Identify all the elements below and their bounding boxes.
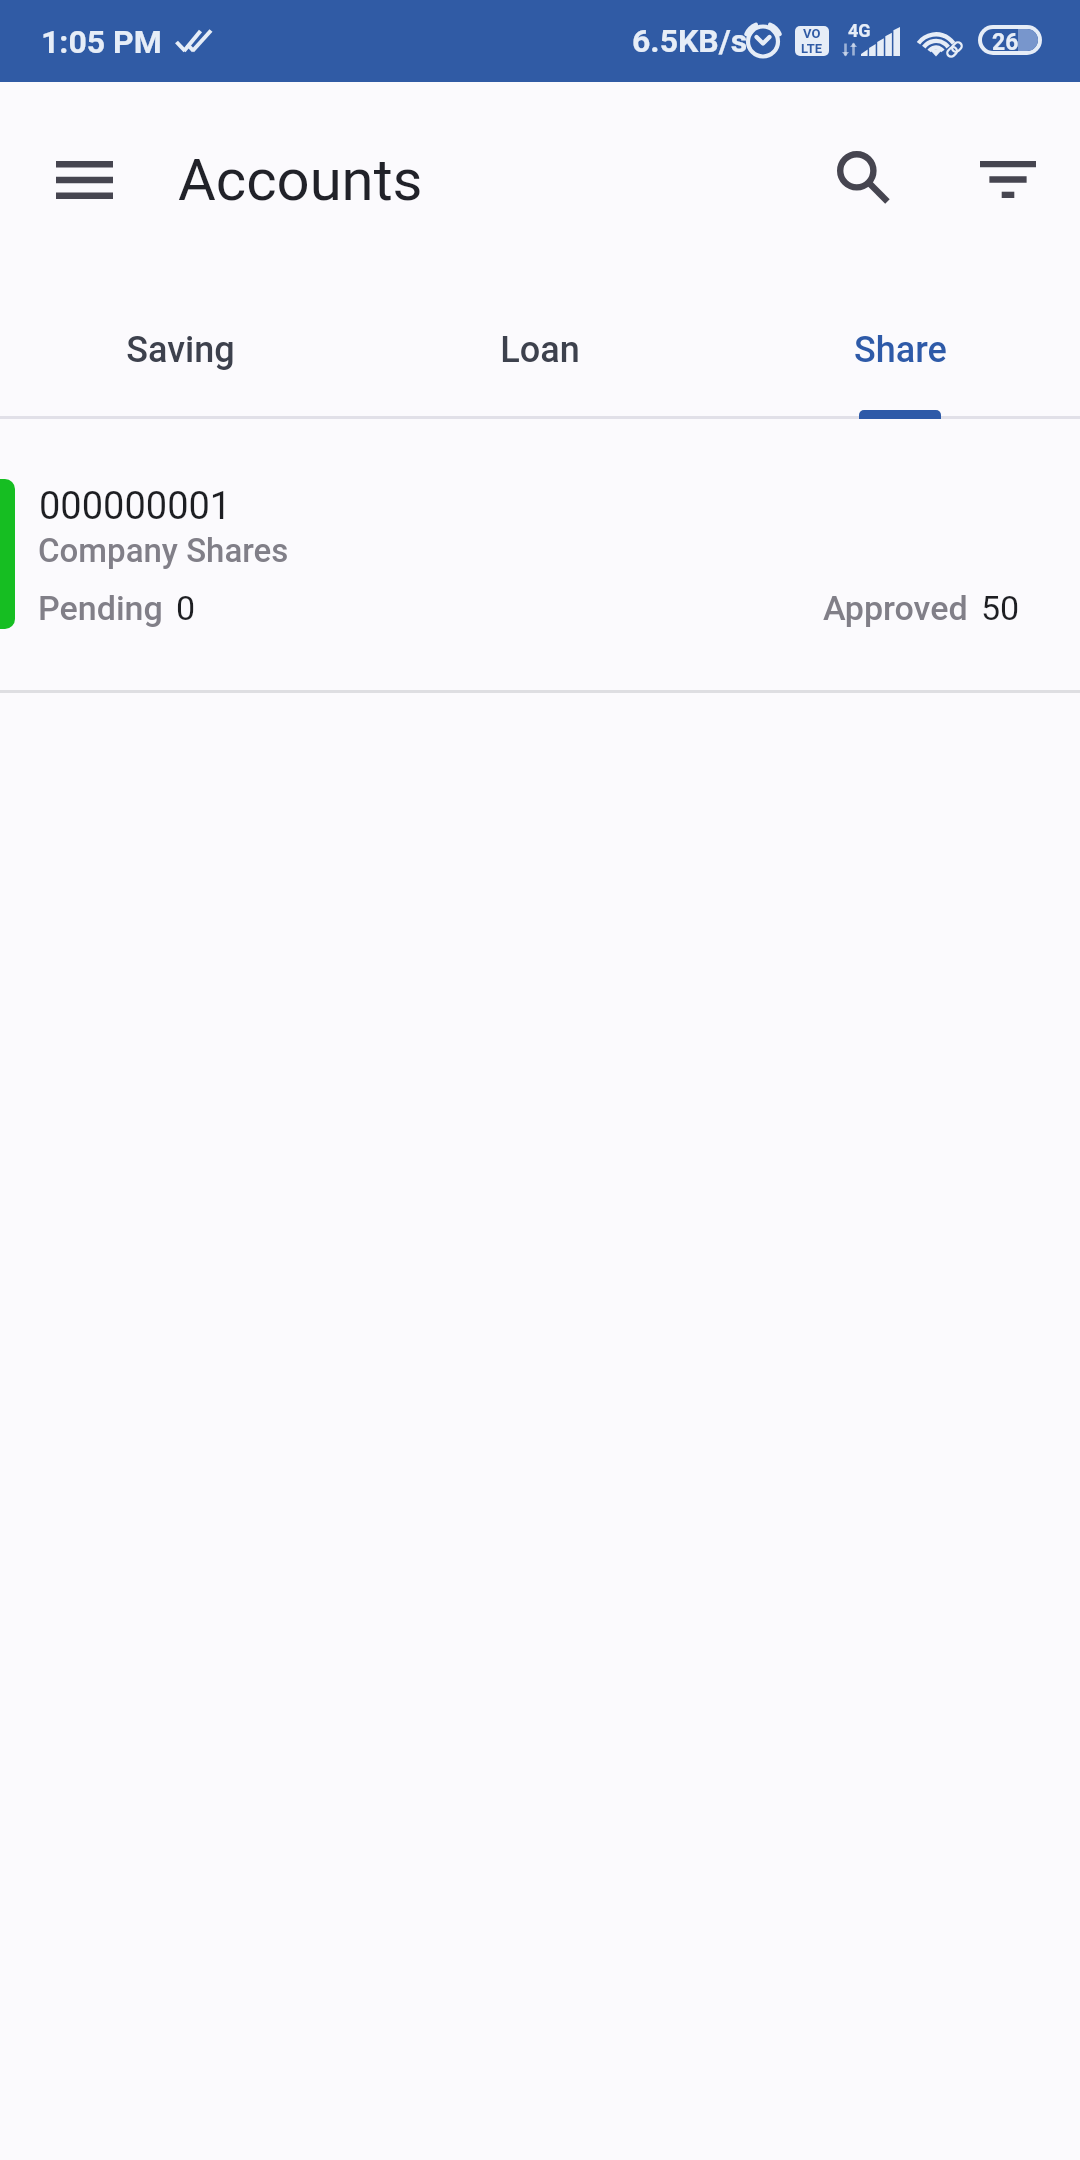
button[interactable]: Loan bbox=[360, 290, 720, 419]
staticText: Approved bbox=[823, 588, 968, 628]
staticText: 000000001 bbox=[39, 484, 232, 529]
staticText: Share bbox=[854, 329, 947, 371]
button[interactable]: 000000001 bbox=[0, 419, 1080, 693]
staticText: Company Shares bbox=[38, 531, 289, 570]
button[interactable]: Search bbox=[807, 121, 919, 233]
staticText: Saving bbox=[126, 329, 235, 371]
button[interactable]: Open navigation menu bbox=[28, 124, 140, 236]
staticText: LTE bbox=[801, 41, 823, 56]
staticText: Accounts bbox=[178, 146, 423, 214]
staticText: 50 bbox=[981, 588, 1020, 628]
staticText: 0 bbox=[176, 588, 196, 628]
staticText: 4G bbox=[848, 20, 871, 41]
button[interactable]: Saving bbox=[0, 290, 360, 419]
button[interactable]: Share bbox=[720, 290, 1080, 419]
staticText: Pending bbox=[38, 588, 163, 628]
staticText: VO bbox=[803, 26, 821, 41]
staticText: Loan bbox=[500, 329, 580, 371]
staticText: 26 bbox=[992, 29, 1019, 51]
staticText: 1:05 PM bbox=[41, 23, 162, 61]
button[interactable]: Filter bbox=[952, 123, 1064, 235]
staticText: 6.5KB/s bbox=[632, 22, 748, 60]
